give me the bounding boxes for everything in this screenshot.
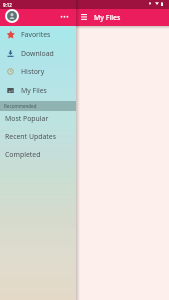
staticText: My Files <box>94 13 121 22</box>
button[interactable]: Profile <box>5 9 19 23</box>
staticText: Most Popular <box>5 114 49 123</box>
staticText: Recent Updates <box>5 132 56 141</box>
staticText: 9:12 <box>3 2 12 8</box>
button[interactable]: Open navigation menu <box>77 10 90 23</box>
button[interactable]: History <box>0 62 76 81</box>
button[interactable]: Most Popular <box>0 109 76 127</box>
button[interactable]: Download <box>0 44 76 63</box>
staticText: Favorites <box>21 30 51 39</box>
button[interactable]: Favorites <box>0 25 76 44</box>
staticText: Download <box>21 49 54 58</box>
staticText: History <box>21 67 45 76</box>
button[interactable]: My Files <box>0 81 76 100</box>
staticText: Recommended <box>4 103 37 109</box>
staticText: Completed <box>5 150 41 159</box>
button[interactable]: Completed <box>0 145 76 163</box>
button[interactable]: More options <box>58 10 70 22</box>
button[interactable]: Recent Updates <box>0 127 76 145</box>
staticText: My Files <box>21 86 47 95</box>
